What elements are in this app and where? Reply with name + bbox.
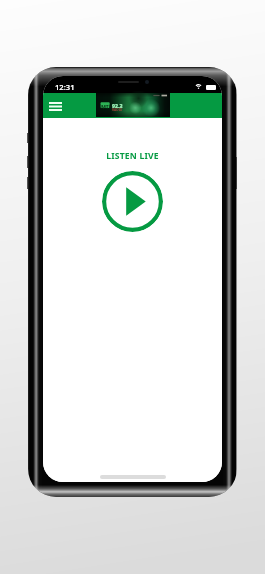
- staticText: LISTEN LIVE: [106, 150, 159, 162]
- button[interactable]: Station logo: [96, 93, 170, 117]
- staticText: MIX: [101, 103, 113, 110]
- staticText: RADIO: [112, 108, 123, 112]
- button[interactable]: Play live stream: [102, 171, 163, 232]
- staticText: 92.3: [112, 102, 123, 109]
- staticText: 12:31: [55, 82, 75, 92]
- button[interactable]: Open navigation menu: [45, 95, 65, 117]
